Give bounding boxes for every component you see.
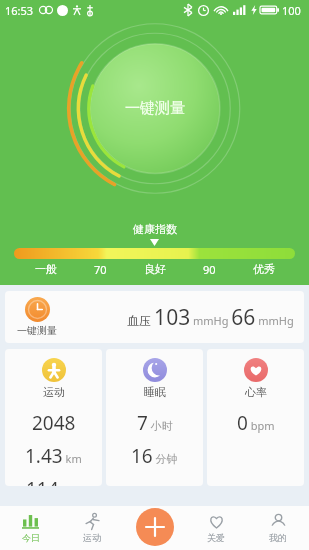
staticText: 16:53: [5, 3, 34, 18]
staticText: 健康指数: [133, 222, 177, 236]
staticText: 一键测量: [125, 99, 185, 118]
button[interactable]: 睡眠: [106, 349, 203, 486]
staticText: 2048: [32, 410, 76, 436]
staticText: 114 kcal: [26, 476, 82, 486]
staticText: 良好: [144, 262, 166, 276]
staticText: 运动: [43, 385, 65, 399]
staticText: 睡眠: [144, 385, 166, 399]
button[interactable]: 一键测量: [5, 291, 304, 343]
staticText: 心率: [245, 385, 267, 399]
staticText: 优秀: [253, 262, 275, 276]
button[interactable]: 心率: [207, 349, 304, 486]
staticText: 7 小时: [137, 410, 173, 436]
button[interactable]: 运动: [5, 349, 102, 486]
staticText: 运动: [83, 532, 101, 543]
staticText: 1.43 km: [25, 443, 82, 469]
button[interactable]: 添加: [136, 508, 174, 546]
staticText: 0 bpm: [237, 410, 275, 436]
staticText: 90: [203, 262, 216, 277]
button[interactable]: 一键测量: [65, 22, 245, 195]
staticText: 关爱: [207, 532, 225, 543]
button[interactable]: 关爱: [185, 506, 247, 550]
staticText: 一键测量: [17, 324, 57, 337]
staticText: 今日: [22, 532, 40, 543]
staticText: 血压 103 mmHg 66 mmHg: [127, 303, 294, 332]
button[interactable]: 运动: [61, 506, 123, 550]
staticText: 16 分钟: [131, 443, 178, 469]
staticText: 70: [94, 262, 107, 277]
button[interactable]: 我的: [247, 506, 309, 550]
staticText: 100: [282, 3, 301, 18]
button[interactable]: 今日: [0, 506, 61, 550]
staticText: 一般: [35, 262, 57, 276]
staticText: 我的: [269, 532, 287, 543]
